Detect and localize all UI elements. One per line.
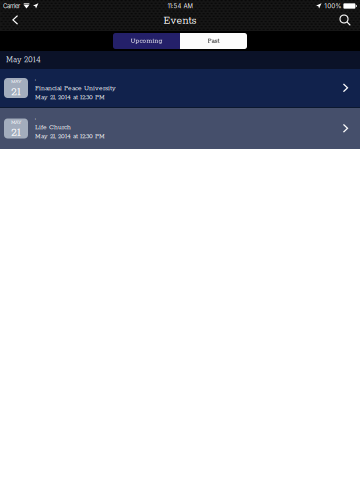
staticText: Past <box>207 37 219 45</box>
staticText: May 21, 2014 at 12:30 PM <box>35 93 105 101</box>
staticText: Upcoming <box>130 37 162 45</box>
button[interactable]: Back <box>0 12 28 31</box>
staticText: ' <box>35 79 36 86</box>
staticText: Life Church <box>35 123 71 132</box>
staticText: May 21, 2014 at 12:30 PM <box>35 132 105 140</box>
staticText: Events <box>163 15 196 27</box>
button[interactable]: MAY <box>0 108 360 149</box>
staticText: 21 <box>11 85 21 99</box>
staticText: 100% <box>324 2 341 10</box>
button[interactable]: MAY <box>0 69 360 107</box>
staticText: Financial Peace University <box>35 84 116 93</box>
button[interactable]: Search <box>332 12 360 31</box>
staticText: May 2014 <box>6 55 41 65</box>
staticText: ' <box>35 118 36 125</box>
staticText: 11:54 AM <box>167 2 192 10</box>
button[interactable]: Past <box>180 33 247 49</box>
staticText: 21 <box>11 126 21 140</box>
button[interactable]: Upcoming <box>113 33 180 49</box>
staticText: Carrier <box>3 2 20 10</box>
staticText: MAY <box>11 119 21 126</box>
staticText: MAY <box>11 79 21 85</box>
